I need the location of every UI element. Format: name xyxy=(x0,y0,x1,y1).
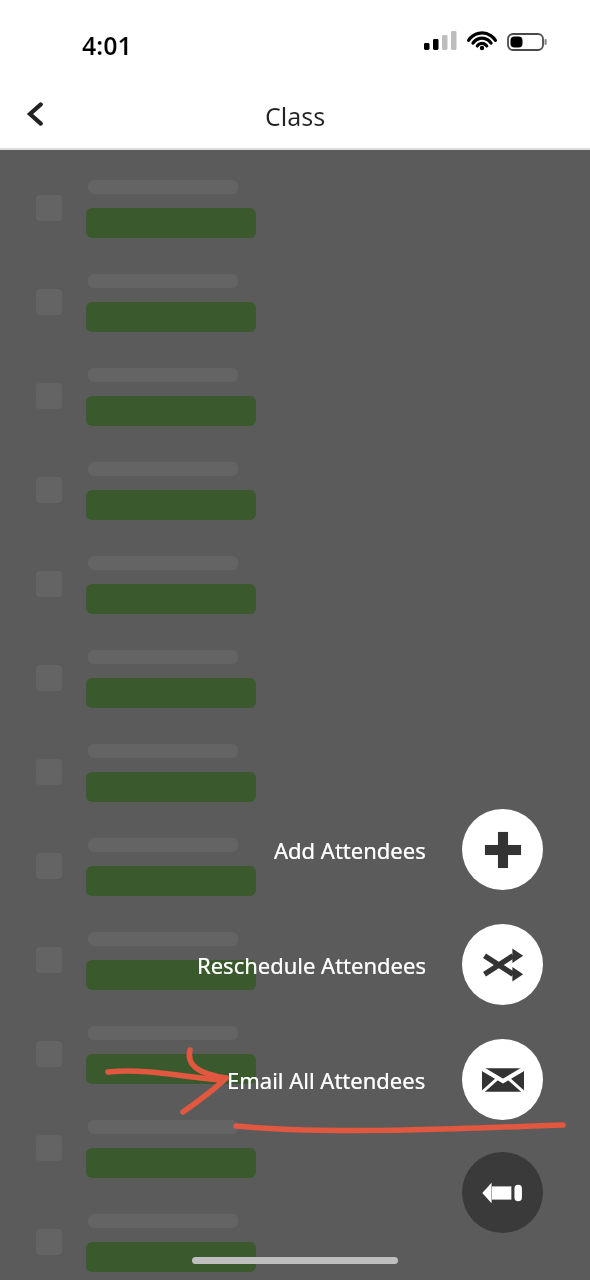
button[interactable]: Reschedule Attendees xyxy=(0,924,590,1005)
button[interactable]: Email All Attendees xyxy=(0,1039,590,1120)
staticText: 4:01 xyxy=(82,28,132,62)
other: Reschedule Attendees xyxy=(462,924,543,1005)
staticText: Email All Attendees xyxy=(227,1065,426,1095)
button[interactable]: Add Attendees xyxy=(0,809,590,890)
button[interactable]: Edit xyxy=(462,1152,543,1233)
staticText: Class xyxy=(0,99,590,133)
other: Email All Attendees xyxy=(462,1039,543,1120)
other: Add Attendees xyxy=(462,809,543,890)
staticText: Add Attendees xyxy=(274,835,426,865)
button[interactable]: Back xyxy=(8,78,64,150)
staticText: Reschedule Attendees xyxy=(197,950,426,980)
